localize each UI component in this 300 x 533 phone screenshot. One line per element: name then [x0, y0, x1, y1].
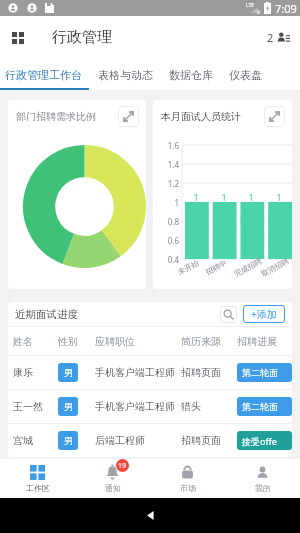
staticText: 0.4: [155, 254, 179, 265]
staticText: 仪表盘: [229, 68, 262, 82]
staticText: 1: [155, 197, 179, 208]
staticText: 招聘页面: [181, 366, 221, 379]
staticText: 男: [64, 435, 73, 446]
staticText: 0.8: [155, 216, 179, 227]
button[interactable]: Members: [257, 30, 300, 45]
staticText: +添加: [251, 307, 277, 321]
staticText: 王一然: [13, 400, 43, 413]
staticText: LTE: [246, 2, 255, 9]
button[interactable]: 我的: [225, 459, 300, 498]
button[interactable]: Search: [220, 306, 237, 323]
staticText: 取消招聘: [260, 256, 290, 278]
staticText: 0.6: [155, 235, 179, 246]
button[interactable]: Expand: [118, 106, 139, 127]
staticText: 数据仓库: [169, 68, 213, 82]
staticText: 性别: [58, 335, 78, 348]
staticText: 行政管理: [52, 28, 112, 47]
button[interactable]: 仪表盘: [221, 68, 270, 82]
staticText: 部门招聘需求比例: [16, 110, 96, 123]
staticText: 表格与动态: [98, 68, 153, 82]
button[interactable]: 19: [75, 459, 150, 498]
button[interactable]: 工作区: [0, 459, 75, 498]
staticText: 2: [267, 30, 274, 45]
staticText: 1: [219, 192, 229, 203]
button[interactable]: 王一然: [8, 390, 292, 423]
button[interactable]: 行政管理工作台: [0, 68, 90, 82]
staticText: 男: [64, 367, 73, 378]
staticText: 行政管理工作台: [5, 68, 82, 82]
staticText: 接受offe: [242, 435, 277, 447]
staticText: 应聘职位: [95, 335, 135, 348]
staticText: 我的: [255, 483, 271, 493]
staticText: 工作区: [26, 483, 50, 493]
staticText: 7:09: [275, 1, 297, 16]
staticText: 1.4: [155, 159, 179, 170]
staticText: 1: [246, 192, 256, 203]
button[interactable]: 表格与动态: [90, 68, 161, 82]
button[interactable]: Expand: [264, 106, 285, 127]
staticText: 招聘页面: [181, 434, 221, 447]
button[interactable]: 宫城: [8, 424, 292, 457]
staticText: 1.2: [155, 178, 179, 189]
staticText: 本月面试人员统计: [161, 110, 241, 123]
button[interactable]: 数据仓库: [161, 68, 221, 82]
staticText: 未开始: [176, 258, 201, 277]
staticText: 手机客户端工程师: [95, 400, 175, 413]
staticText: 简历来源: [181, 335, 221, 348]
button[interactable]: 市场: [150, 459, 225, 498]
staticText: 1: [191, 192, 201, 203]
staticText: 通知: [105, 483, 121, 493]
staticText: 第二轮面: [242, 401, 278, 412]
button[interactable]: +添加: [243, 305, 285, 323]
staticText: 1: [274, 192, 284, 203]
staticText: 猎头: [181, 400, 201, 413]
staticText: 康乐: [13, 366, 33, 379]
staticText: 招聘进展: [237, 335, 277, 348]
staticText: 市场: [180, 483, 196, 493]
staticText: 1.6: [155, 140, 179, 151]
staticText: 后端工程师: [95, 434, 145, 447]
staticText: 19: [118, 461, 127, 471]
staticText: 男: [64, 401, 73, 412]
staticText: 姓名: [13, 335, 33, 348]
staticText: 近期面试进度: [15, 308, 78, 321]
staticText: 宫城: [13, 434, 33, 447]
button[interactable]: Menu: [0, 20, 36, 56]
other: Back: [145, 510, 156, 521]
button[interactable]: 康乐: [8, 356, 292, 389]
staticText: 第二轮面: [242, 367, 278, 378]
staticText: 手机客户端工程师: [95, 366, 175, 379]
staticText: 完成招聘: [233, 256, 263, 278]
staticText: 招聘中: [204, 258, 229, 277]
